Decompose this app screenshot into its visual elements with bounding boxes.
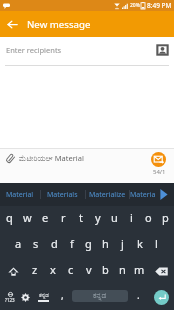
button[interactable]: x <box>44 258 62 284</box>
button[interactable]: , <box>54 284 71 310</box>
staticText: e <box>42 210 49 225</box>
staticText: j <box>121 236 124 251</box>
button[interactable]: Enter <box>148 284 174 310</box>
staticText: m <box>134 262 145 277</box>
button[interactable]: Backspace <box>148 258 174 284</box>
staticText: Materials <box>47 190 78 200</box>
button[interactable]: v <box>80 258 97 284</box>
staticText: r <box>61 210 66 225</box>
button[interactable]: o <box>140 206 157 232</box>
button[interactable]: y <box>89 206 106 232</box>
button[interactable]: h <box>97 232 114 258</box>
staticText: c <box>68 262 74 277</box>
staticText: f <box>70 236 74 251</box>
staticText: ಕನ್ನಡ <box>93 292 107 300</box>
button[interactable]: Materia <box>129 183 156 206</box>
staticText: v <box>86 262 92 277</box>
button[interactable]: i <box>123 206 140 232</box>
button[interactable]: Materials <box>40 183 84 206</box>
staticText: u <box>111 210 118 225</box>
button[interactable]: k <box>131 232 148 258</box>
button[interactable]: t <box>72 206 89 232</box>
button[interactable]: m <box>131 258 148 284</box>
staticText: k <box>137 236 143 251</box>
button[interactable]: More suggestions <box>156 183 172 206</box>
staticText: 8:49 PM <box>147 1 172 10</box>
staticText: , <box>61 288 64 302</box>
button[interactable]: a <box>9 232 27 258</box>
button[interactable]: Change language <box>34 284 52 310</box>
staticText: ?123 <box>5 297 15 303</box>
staticText: Enter recipients <box>6 45 154 55</box>
button[interactable]: n <box>114 258 131 284</box>
staticText: New message <box>27 18 91 31</box>
staticText: z <box>32 262 38 277</box>
staticText: Materialize <box>89 190 126 200</box>
staticText: y <box>95 210 101 225</box>
staticText: Material <box>6 190 34 200</box>
button[interactable]: p <box>157 206 174 232</box>
button[interactable]: . <box>130 284 147 310</box>
button[interactable]: Send message <box>146 149 174 183</box>
staticText: ಮೆಟೀರಿಯಲ್ Material <box>19 153 84 163</box>
button[interactable]: Space <box>72 290 128 302</box>
staticText: ಕನ್ನಡ <box>39 293 49 299</box>
button[interactable]: b <box>97 258 114 284</box>
staticText: s <box>33 236 39 251</box>
button[interactable]: Settings <box>17 284 34 310</box>
button[interactable]: c <box>62 258 80 284</box>
button[interactable]: f <box>63 232 80 258</box>
button[interactable]: Add contact <box>154 43 170 59</box>
button[interactable]: r <box>54 206 72 232</box>
staticText: b <box>102 262 109 277</box>
staticText: 54/1 <box>153 168 166 176</box>
staticText: a <box>15 236 22 251</box>
staticText: t <box>79 210 83 225</box>
staticText: Materia <box>130 190 156 200</box>
button[interactable]: d <box>45 232 63 258</box>
staticText: h <box>102 236 109 251</box>
button[interactable]: Back <box>0 12 24 36</box>
staticText: w <box>23 210 32 225</box>
button[interactable]: z <box>26 258 44 284</box>
staticText: o <box>145 210 152 225</box>
button[interactable]: Material <box>0 183 40 206</box>
staticText: . <box>137 288 140 302</box>
button[interactable]: Attach <box>2 150 18 166</box>
staticText: n <box>119 262 126 277</box>
button[interactable]: Symbols <box>1 284 18 310</box>
staticText: x <box>50 262 56 277</box>
staticText: 20% <box>130 2 140 9</box>
button[interactable]: l <box>148 232 165 258</box>
staticText: g <box>85 236 92 251</box>
staticText: p <box>162 210 169 225</box>
staticText: l <box>155 236 158 251</box>
button[interactable]: Materialize <box>85 183 129 206</box>
staticText: d <box>51 236 58 251</box>
button[interactable]: s <box>27 232 45 258</box>
button[interactable]: u <box>106 206 123 232</box>
button[interactable]: g <box>80 232 97 258</box>
button[interactable]: q <box>0 206 18 232</box>
staticText: q <box>6 210 13 225</box>
button[interactable]: Shift <box>0 258 26 284</box>
button[interactable]: w <box>18 206 36 232</box>
button[interactable]: j <box>114 232 131 258</box>
staticText: i <box>130 210 133 225</box>
button[interactable]: e <box>36 206 54 232</box>
